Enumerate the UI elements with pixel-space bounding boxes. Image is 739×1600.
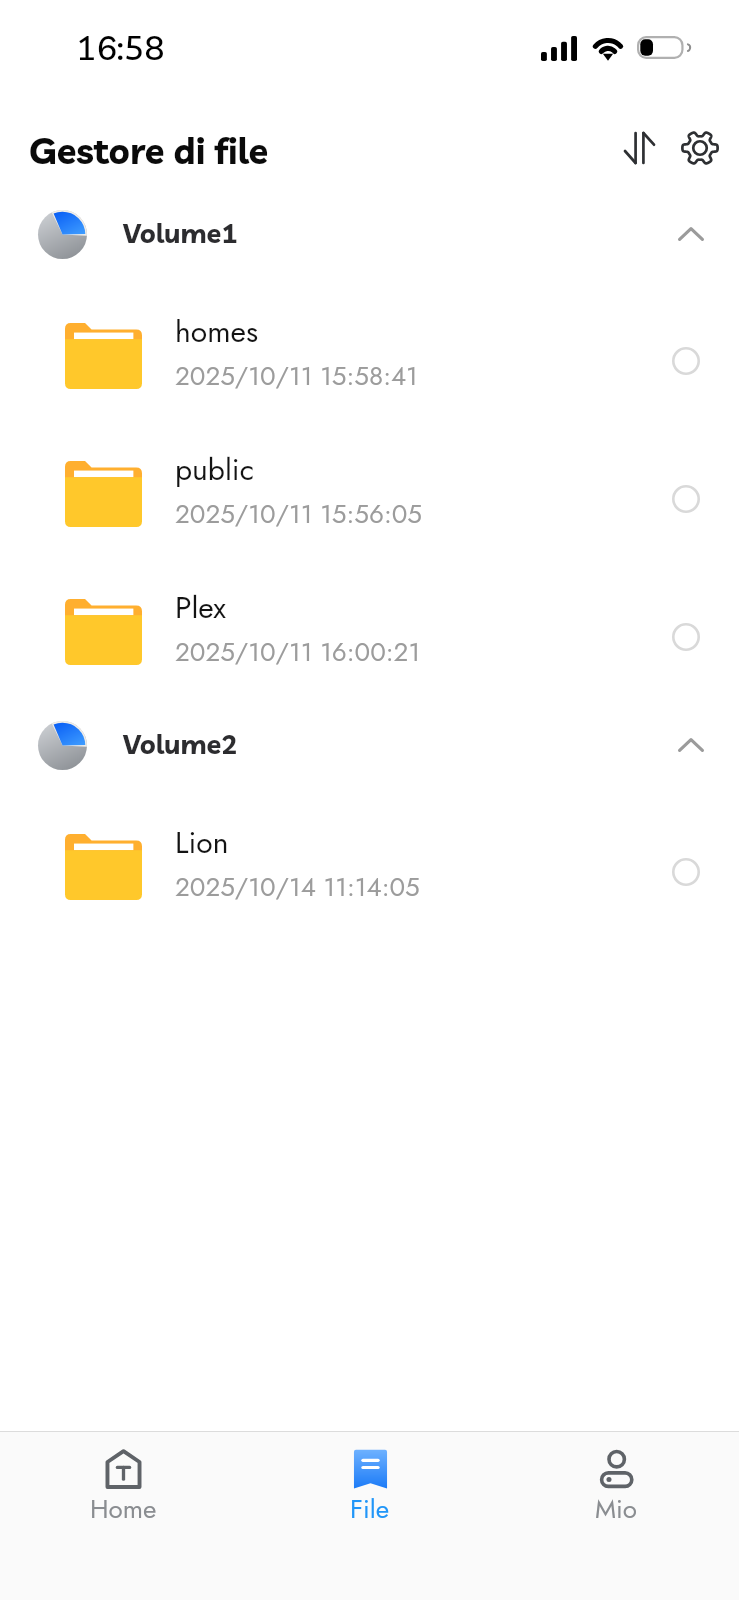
button[interactable]: Plex xyxy=(0,565,739,703)
button[interactable]: homes xyxy=(0,289,739,427)
button[interactable]: Collapse Volume2 xyxy=(661,715,721,775)
staticText: 2025/10/14 11:14:05 xyxy=(175,868,420,906)
staticText: Plex xyxy=(175,586,226,629)
button[interactable]: Volume2 xyxy=(0,703,739,800)
staticText: Volume1 xyxy=(123,216,238,250)
button[interactable]: Settings xyxy=(669,117,731,179)
staticText: 16:58 xyxy=(76,26,165,69)
staticText: 2025/10/11 15:58:41 xyxy=(175,357,418,395)
staticText: Volume2 xyxy=(123,727,238,761)
staticText: 2025/10/11 15:56:05 xyxy=(175,495,423,533)
button[interactable]: Mio xyxy=(493,1432,739,1600)
staticText: public xyxy=(175,448,254,491)
button[interactable]: Select xyxy=(657,332,714,389)
button[interactable]: Home xyxy=(0,1432,247,1600)
staticText: Home xyxy=(90,1490,157,1528)
staticText: Gestore di file xyxy=(29,128,269,173)
button[interactable]: Select xyxy=(657,470,714,527)
staticText: homes xyxy=(175,310,259,353)
button[interactable]: public xyxy=(0,427,739,565)
button[interactable]: File xyxy=(247,1432,493,1600)
staticText: 2025/10/11 16:00:21 xyxy=(175,633,421,671)
button[interactable]: Sort xyxy=(608,117,670,179)
staticText: Lion xyxy=(175,821,229,864)
button[interactable]: Volume1 xyxy=(0,192,739,289)
button[interactable]: Collapse Volume1 xyxy=(661,204,721,264)
button[interactable]: Select xyxy=(657,608,714,665)
button[interactable]: Lion xyxy=(0,800,739,938)
staticText: Mio xyxy=(595,1490,638,1528)
staticText: File xyxy=(350,1490,390,1528)
button[interactable]: Select xyxy=(657,843,714,900)
